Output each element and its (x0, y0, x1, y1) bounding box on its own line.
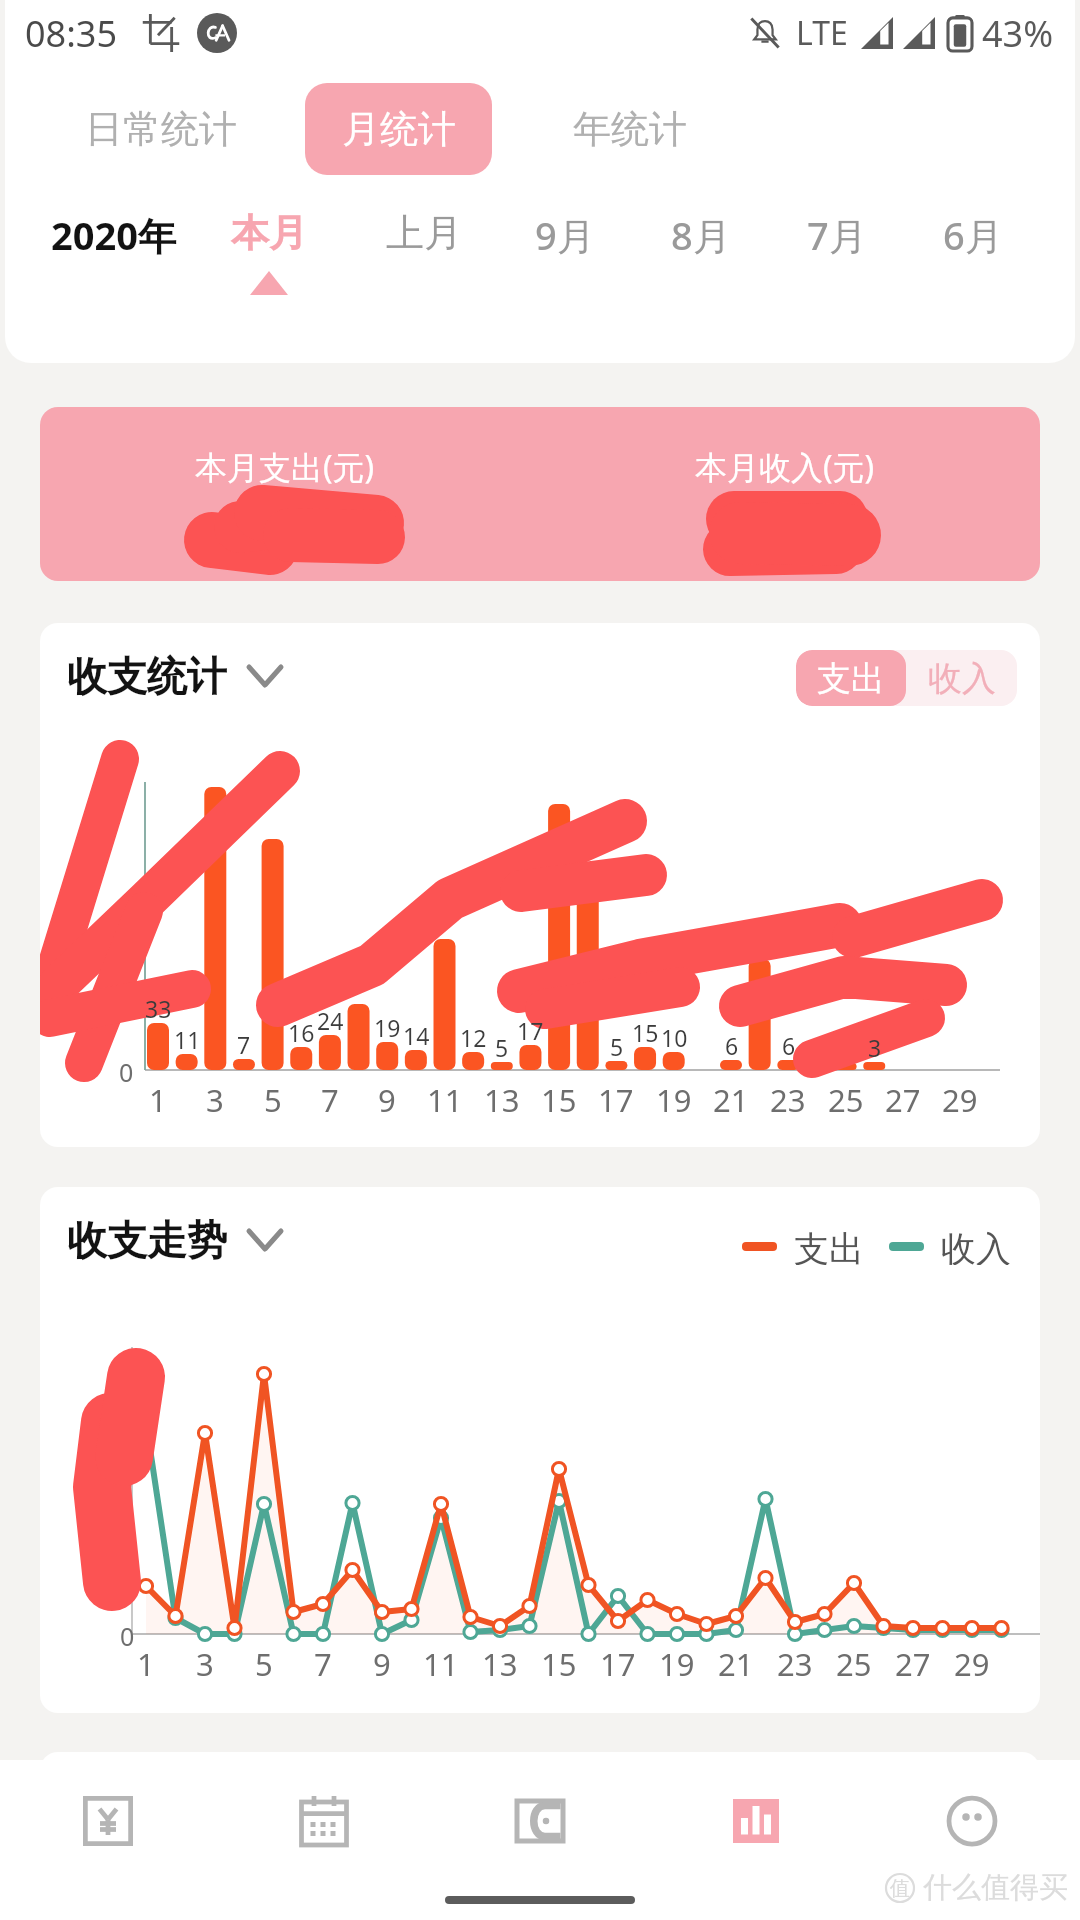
staticText: 5 (255, 1643, 273, 1685)
staticText: 收支走势 (67, 1215, 227, 1265)
staticText: 6 (725, 1030, 739, 1061)
staticText: 33 (145, 993, 172, 1024)
button[interactable]: 收支走势 (67, 1215, 281, 1265)
staticText: 本月支出(元) (195, 445, 375, 489)
button[interactable]: Wallet (432, 1760, 648, 1882)
staticText: 15 (541, 1643, 577, 1685)
staticText: 支出 (794, 1227, 864, 1265)
staticText: 25 (836, 1643, 872, 1685)
staticText: 21 (718, 1643, 754, 1685)
staticText: 17 (517, 1015, 544, 1046)
staticText: 15 (632, 1017, 659, 1048)
button[interactable]: 上月 (364, 209, 484, 319)
staticText: 支出 (817, 657, 885, 700)
staticText: 13 (484, 1079, 520, 1121)
button[interactable]: 本月支出(元) (40, 407, 1040, 581)
staticText: 3 (196, 1643, 214, 1685)
button[interactable]: 支出 (796, 650, 906, 706)
staticText: 16 (288, 1017, 315, 1048)
staticText: 23 (777, 1643, 813, 1685)
staticText: 7 (321, 1079, 339, 1121)
staticText: 9 (373, 1643, 391, 1685)
staticText: 25 (828, 1079, 864, 1121)
staticText: 9 (378, 1079, 396, 1121)
staticText: 11 (174, 1024, 201, 1055)
button[interactable]: 7月 (777, 209, 897, 319)
staticText: 15 (541, 1079, 577, 1121)
staticText: 7 (237, 1029, 251, 1060)
button[interactable]: Bills (0, 1760, 216, 1882)
staticText: 上月 (386, 209, 462, 257)
staticText: 19 (659, 1643, 695, 1685)
staticText: 29 (954, 1643, 990, 1685)
staticText: 19 (374, 1012, 401, 1043)
staticText: 29 (942, 1079, 978, 1121)
staticText: 08:35 (25, 9, 118, 58)
staticText: 本月 (231, 209, 307, 257)
staticText: 23 (770, 1079, 806, 1121)
staticText: 日常统计 (85, 105, 237, 153)
staticText: 21 (713, 1079, 749, 1121)
staticText: 6月 (943, 209, 1003, 261)
staticText: 7 (314, 1643, 332, 1685)
staticText: 收支统计 (67, 651, 227, 701)
staticText: 2020年 (51, 209, 176, 261)
staticText: 收入 (928, 657, 996, 700)
staticText: 19 (656, 1079, 692, 1121)
staticText: 5 (495, 1032, 509, 1063)
staticText: 0 (120, 1619, 135, 1653)
staticText: 14 (403, 1020, 430, 1051)
staticText: 13 (482, 1643, 518, 1685)
button[interactable]: Calendar (216, 1760, 432, 1882)
staticText: 11 (423, 1643, 459, 1685)
staticText: 43% (982, 9, 1054, 58)
staticText: 3 (206, 1079, 224, 1121)
staticText: 17 (600, 1643, 636, 1685)
staticText: 9月 (535, 209, 595, 261)
staticText: 本月收入(元) (695, 445, 875, 489)
button[interactable]: 收入 (906, 650, 1017, 706)
staticText: 6 (782, 1030, 796, 1061)
staticText: 0 (119, 1055, 134, 1089)
staticText: 8月 (671, 209, 731, 261)
staticText: 1 (149, 1079, 167, 1121)
staticText: LTE (796, 11, 848, 55)
button[interactable]: 月统计 (305, 83, 492, 175)
staticText: 3 (868, 1032, 882, 1063)
staticText: 24 (317, 1005, 344, 1036)
staticText: 27 (885, 1079, 921, 1121)
staticText: 17 (598, 1079, 634, 1121)
staticText: 月统计 (342, 105, 456, 153)
staticText: 11 (427, 1079, 463, 1121)
button[interactable]: 2020年 (33, 209, 193, 319)
staticText: 7月 (807, 209, 867, 261)
staticText: 5 (264, 1079, 282, 1121)
button[interactable]: 9月 (505, 209, 625, 319)
button[interactable]: 本月 (209, 209, 329, 319)
button[interactable]: 收支统计 (67, 651, 281, 701)
staticText: 12 (460, 1022, 487, 1053)
staticText: 5 (610, 1031, 624, 1062)
staticText: 什么值得买 (923, 1869, 1068, 1906)
staticText: 10 (661, 1022, 688, 1053)
button[interactable]: 日常统计 (85, 83, 237, 175)
button[interactable]: 年统计 (573, 83, 687, 175)
button[interactable]: 6月 (913, 209, 1033, 319)
staticText: 年统计 (573, 105, 687, 153)
button[interactable]: Profile (864, 1760, 1080, 1882)
staticText: 值 (890, 1876, 910, 1901)
button[interactable]: Statistics (648, 1760, 864, 1882)
button[interactable]: 8月 (641, 209, 761, 319)
staticText: 1 (137, 1643, 155, 1685)
staticText: 收入 (941, 1227, 1011, 1265)
staticText: 27 (895, 1643, 931, 1685)
